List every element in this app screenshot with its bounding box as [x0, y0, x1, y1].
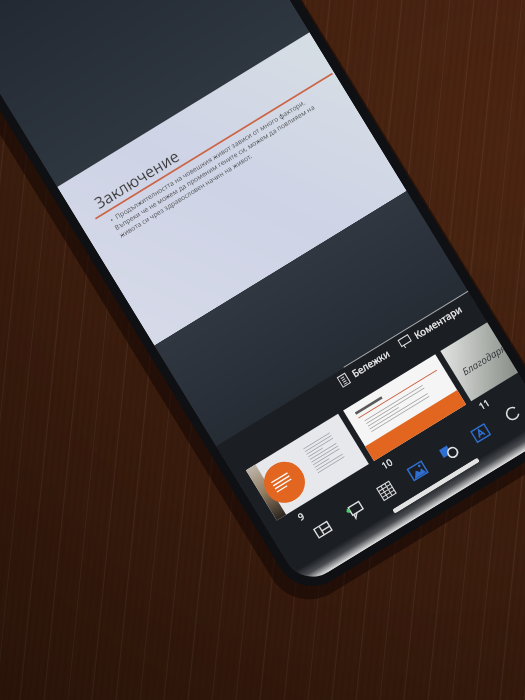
staticText: Благодаря! [459, 342, 507, 378]
button[interactable]: Layout [298, 505, 348, 554]
button[interactable]: Бележки [333, 343, 394, 392]
staticText: Заключение [90, 145, 183, 214]
button[interactable]: Коментари [395, 299, 467, 354]
staticText: Коментари [411, 302, 465, 342]
button[interactable]: Image [393, 447, 442, 496]
staticText: 11 [476, 396, 492, 413]
staticText: • Продължителността на човешкия живот за… [108, 86, 336, 240]
staticText: Бележки [349, 346, 392, 380]
button[interactable]: Undo [487, 389, 525, 438]
button[interactable]: 9 [246, 414, 377, 534]
button[interactable]: Table [361, 467, 411, 515]
button[interactable]: 10 [343, 354, 474, 474]
button[interactable]: Text box [456, 409, 505, 457]
button[interactable]: Shapes [424, 428, 474, 476]
button[interactable]: Благодаря! [440, 322, 525, 415]
button[interactable]: Add comment [330, 486, 379, 534]
staticText: 9 [295, 509, 307, 524]
staticText: 10 [379, 456, 395, 472]
